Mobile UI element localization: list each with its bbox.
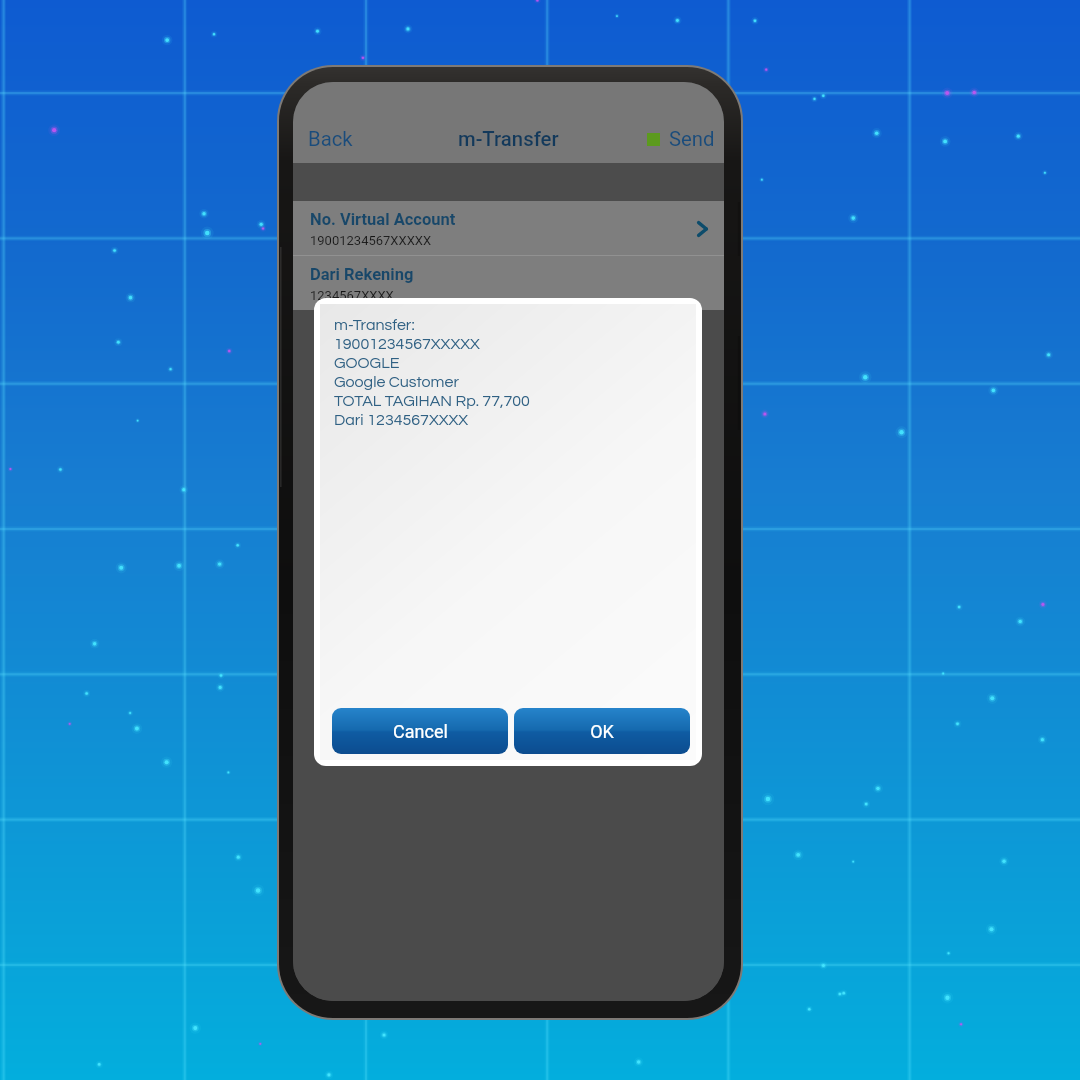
button[interactable]: Dari Rekening [293,256,724,310]
staticText: Dari Rekening [310,265,414,284]
staticText: m-Transfer [458,127,559,151]
staticText: 1234567XXXX [310,288,394,303]
button[interactable]: Send [639,121,723,157]
button[interactable]: OK [514,708,690,754]
staticText: Send [669,127,715,151]
button[interactable]: No. Virtual Account [293,201,724,255]
staticText: OK [590,721,614,742]
staticText: Back [308,127,353,151]
staticText: 19001234567XXXXX [310,233,432,248]
button[interactable]: Cancel [332,708,508,754]
staticText: Cancel [393,721,448,742]
other: Open virtual account [697,221,708,237]
staticText: m-Transfer: 19001234567XXXXX GOOGLE Goog… [334,317,530,428]
staticText: No. Virtual Account [310,210,456,229]
button[interactable]: Back [300,121,361,157]
